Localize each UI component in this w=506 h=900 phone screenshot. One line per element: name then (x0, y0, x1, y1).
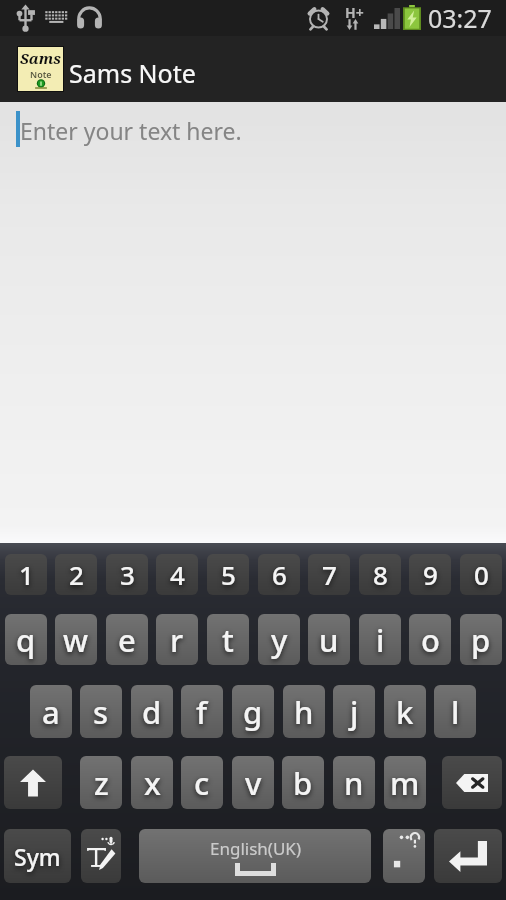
staticText: English(UK) (210, 837, 301, 860)
staticText: 5 (221, 557, 236, 592)
button[interactable]: c (181, 756, 223, 809)
button[interactable]: 0 (460, 554, 502, 595)
staticText: Enter your text here. (20, 115, 242, 146)
staticText: o (421, 619, 440, 661)
button[interactable]: w (55, 614, 97, 665)
button[interactable]: y (258, 614, 300, 665)
staticText: r (170, 619, 184, 661)
button[interactable]: q (5, 614, 47, 665)
staticText: z (94, 762, 109, 804)
staticText: n (344, 762, 364, 804)
button[interactable]: shift (4, 756, 62, 809)
staticText: 6 (272, 557, 287, 592)
button[interactable]: v (232, 756, 274, 809)
staticText: c (194, 762, 210, 804)
button[interactable]: a (30, 685, 72, 738)
staticText: q (16, 619, 36, 661)
staticText: 9 (423, 557, 438, 592)
button[interactable]: i (359, 614, 401, 665)
staticText: s (93, 691, 109, 733)
button[interactable]: p (460, 614, 502, 665)
button[interactable]: Backspace (442, 756, 502, 809)
button[interactable]: j (333, 685, 375, 738)
staticText: 03:27 (428, 1, 492, 35)
staticText: x (144, 762, 161, 804)
button[interactable]: 9 (409, 554, 451, 595)
staticText: h (294, 691, 314, 733)
staticText: t (222, 619, 234, 661)
button[interactable]: Space (139, 829, 371, 883)
button[interactable]: 6 (258, 554, 300, 595)
button[interactable]: g (232, 685, 274, 738)
button[interactable]: 3 (106, 554, 148, 595)
button[interactable]: u (308, 614, 350, 665)
staticText: i (376, 619, 385, 661)
staticText: g (243, 691, 263, 733)
button[interactable]: o (409, 614, 451, 665)
button[interactable]: Period (383, 829, 425, 883)
staticText: a (42, 691, 60, 733)
button[interactable]: m (384, 756, 426, 809)
button[interactable]: r (156, 614, 198, 665)
staticText: j (350, 691, 359, 733)
staticText: e (118, 619, 136, 661)
staticText: m (390, 762, 420, 804)
button[interactable]: k (384, 685, 426, 738)
button[interactable]: Sym (4, 829, 71, 883)
staticText: Sams (20, 48, 62, 68)
staticText: 2 (69, 557, 84, 592)
button[interactable]: f (181, 685, 223, 738)
button[interactable]: 5 (207, 554, 249, 595)
button[interactable]: 7 (308, 554, 350, 595)
staticText: 1 (19, 557, 34, 592)
staticText: 0 (474, 557, 489, 592)
staticText: f (196, 691, 208, 733)
staticText: l (451, 691, 460, 733)
button[interactable]: 1 (5, 554, 47, 595)
button[interactable]: e (106, 614, 148, 665)
button[interactable]: b (282, 756, 324, 809)
staticText: w (63, 619, 89, 661)
button[interactable]: 4 (156, 554, 198, 595)
staticText: d (142, 691, 162, 733)
button[interactable]: t (207, 614, 249, 665)
staticText: b (293, 762, 313, 804)
staticText: Sym (14, 841, 61, 872)
staticText: k (396, 691, 414, 733)
button[interactable]: Handwriting (81, 829, 121, 883)
button[interactable]: l (434, 685, 476, 738)
staticText: 4 (170, 557, 185, 592)
staticText: u (319, 619, 339, 661)
staticText: Sams Note (69, 56, 196, 90)
button[interactable]: n (333, 756, 375, 809)
button[interactable]: x (131, 756, 173, 809)
staticText: y (271, 619, 288, 661)
button[interactable]: d (131, 685, 173, 738)
staticText: p (471, 619, 491, 661)
button[interactable]: s (80, 685, 122, 738)
staticText: H+ (345, 3, 364, 22)
button[interactable]: 8 (359, 554, 401, 595)
staticText: Note (30, 68, 52, 80)
button[interactable]: 2 (55, 554, 97, 595)
staticText: v (245, 762, 262, 804)
button[interactable]: z (80, 756, 122, 809)
button[interactable]: Enter (434, 829, 502, 883)
staticText: 7 (322, 557, 337, 592)
button[interactable]: h (283, 685, 325, 738)
staticText: 8 (373, 557, 388, 592)
staticText: 3 (120, 557, 135, 592)
button[interactable]: App icon (18, 47, 63, 91)
